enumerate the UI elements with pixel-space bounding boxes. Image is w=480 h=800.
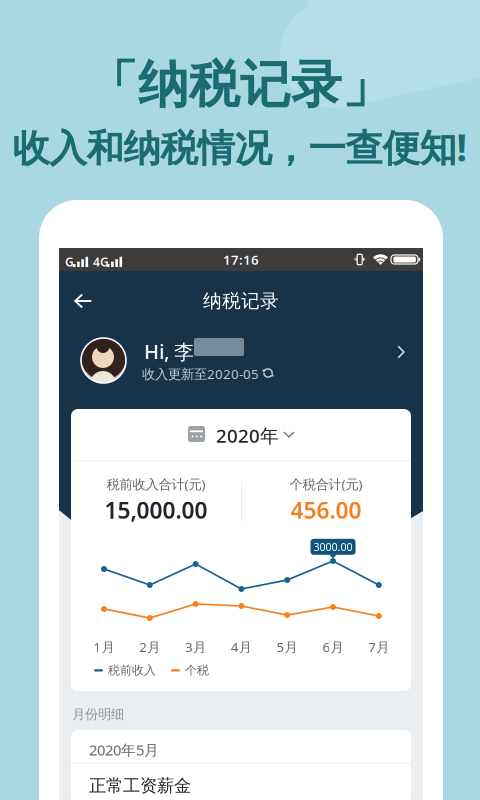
staticText: 4月 <box>231 638 252 656</box>
button[interactable]: Hi, 李 <box>59 314 423 392</box>
staticText: 纳税记录 <box>203 289 279 312</box>
staticText: 2月 <box>139 638 160 656</box>
staticText: 2020年5月 <box>89 740 159 759</box>
staticText: 2020年 <box>216 423 279 448</box>
staticText: 收入更新至2020-05 <box>142 365 259 383</box>
staticText: G <box>65 254 74 270</box>
staticText: 3000.00 <box>313 540 352 554</box>
staticText: 「纳税记录」 <box>87 54 393 116</box>
staticText: 5月 <box>277 638 298 656</box>
button[interactable]: 2020年 <box>71 409 411 460</box>
staticText: 6月 <box>322 638 343 656</box>
staticText: 个税合计(元) <box>289 475 362 493</box>
staticText: 个税 <box>185 663 209 678</box>
staticText: 17:16 <box>223 251 259 268</box>
staticText: 15,000.00 <box>104 495 207 525</box>
button[interactable]: 返回 <box>59 279 108 322</box>
staticText: Hi, 李 <box>144 338 194 365</box>
staticText: 456.00 <box>290 495 361 525</box>
staticText: 税前收入 <box>108 663 156 678</box>
staticText: 4G <box>93 254 109 270</box>
staticText: 7月 <box>368 638 389 656</box>
staticText: 1月 <box>93 638 114 656</box>
staticText: 税前收入合计(元) <box>106 475 205 493</box>
staticText: 正常工资薪金 <box>89 775 191 796</box>
staticText: 月份明细 <box>72 706 124 722</box>
staticText: 收入和纳税情况，一查便知! <box>12 122 467 172</box>
staticText: 3月 <box>185 638 206 656</box>
